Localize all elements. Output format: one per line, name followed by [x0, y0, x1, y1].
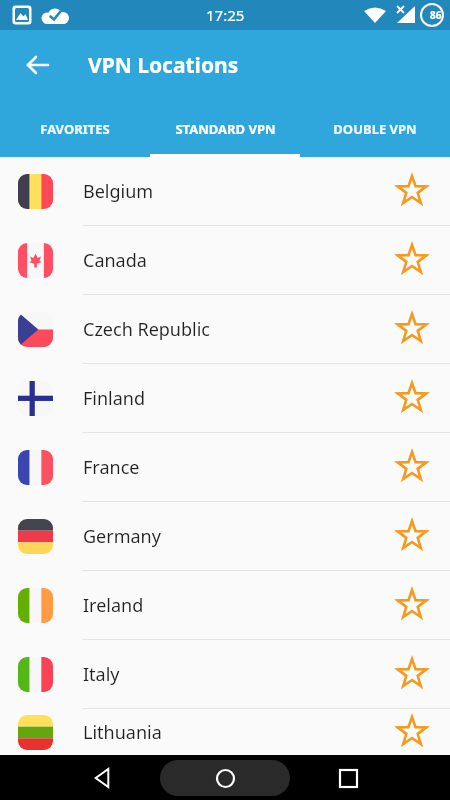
staticText: Czech Republic: [83, 317, 392, 342]
button[interactable]: Lithuania: [0, 708, 450, 755]
button[interactable]: Ireland: [0, 570, 450, 639]
staticText: 17:25: [206, 5, 245, 25]
button[interactable]: Germany: [0, 501, 450, 570]
staticText: France: [83, 455, 392, 480]
button[interactable]: Back: [16, 43, 60, 87]
button[interactable]: Add Ireland to favorites: [392, 585, 432, 625]
staticText: DOUBLE VPN: [333, 120, 417, 138]
staticText: Italy: [83, 662, 392, 687]
button[interactable]: Add Italy to favorites: [392, 654, 432, 694]
button[interactable]: Belgium: [0, 157, 450, 225]
button[interactable]: Back: [81, 757, 123, 799]
button[interactable]: FAVORITES: [0, 100, 150, 157]
button[interactable]: Home: [204, 757, 246, 799]
button[interactable]: Add Czech Republic to favorites: [392, 309, 432, 349]
staticText: Lithuania: [83, 720, 392, 745]
button[interactable]: Canada: [0, 225, 450, 294]
button[interactable]: DOUBLE VPN: [300, 100, 450, 157]
button[interactable]: Add France to favorites: [392, 447, 432, 487]
button[interactable]: STANDARD VPN: [150, 100, 300, 157]
staticText: 86: [430, 8, 442, 22]
button[interactable]: Add Lithuania to favorites: [392, 712, 432, 752]
button[interactable]: Recent apps: [327, 757, 369, 799]
button[interactable]: Add Germany to favorites: [392, 516, 432, 556]
button[interactable]: Add Belgium to favorites: [392, 171, 432, 211]
staticText: Finland: [83, 386, 392, 411]
button[interactable]: Add Canada to favorites: [392, 240, 432, 280]
staticText: Canada: [83, 248, 392, 273]
staticText: Ireland: [83, 593, 392, 618]
staticText: FAVORITES: [40, 120, 110, 138]
button[interactable]: France: [0, 432, 450, 501]
button[interactable]: Italy: [0, 639, 450, 708]
button[interactable]: Czech Republic: [0, 294, 450, 363]
staticText: VPN Locations: [88, 51, 239, 80]
staticText: STANDARD VPN: [175, 120, 276, 138]
staticText: Germany: [83, 524, 392, 549]
staticText: Belgium: [83, 179, 392, 204]
button[interactable]: Add Finland to favorites: [392, 378, 432, 418]
button[interactable]: Finland: [0, 363, 450, 432]
